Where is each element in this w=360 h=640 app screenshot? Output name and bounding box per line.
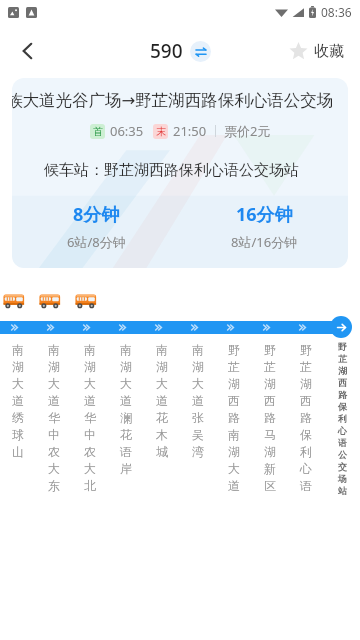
button[interactable]: 野 xyxy=(288,342,324,495)
staticText: 大 xyxy=(192,376,204,391)
staticText: 道 xyxy=(156,393,168,408)
staticText: 大 xyxy=(48,376,60,391)
staticText: 湖 xyxy=(48,359,60,374)
staticText: 8分钟 xyxy=(73,202,120,227)
staticText: 大 xyxy=(48,461,60,476)
staticText: 澜 xyxy=(120,410,132,425)
staticText: 交 xyxy=(338,461,347,472)
staticText: 大 xyxy=(120,376,132,391)
staticText: 野 xyxy=(300,342,312,357)
staticText: 西 xyxy=(300,393,312,408)
staticText: 南 xyxy=(84,342,96,357)
staticText: 06:35 xyxy=(110,122,144,140)
staticText: 保 xyxy=(300,427,312,442)
staticText: 岸 xyxy=(120,461,132,476)
staticText: 湾 xyxy=(192,444,204,459)
button[interactable]: 南 xyxy=(72,342,108,495)
staticText: 16分钟 xyxy=(236,202,293,227)
button[interactable]: Back xyxy=(6,29,50,73)
staticText: 语 xyxy=(300,478,312,493)
button[interactable]: Switch direction xyxy=(190,41,211,62)
staticText: 利 xyxy=(300,444,312,459)
staticText: 中 xyxy=(84,427,96,442)
staticText: 08:36 xyxy=(321,4,352,20)
staticText: 公 xyxy=(338,449,347,460)
staticText: 南 xyxy=(192,342,204,357)
staticText: 野 xyxy=(228,342,240,357)
staticText: 路 xyxy=(264,410,276,425)
staticText: 华 xyxy=(48,410,60,425)
staticText: 花 xyxy=(120,427,132,442)
staticText: 族大道光谷广场→野芷湖西路保利心语公交场站 xyxy=(12,90,342,111)
staticText: 中 xyxy=(48,427,60,442)
staticText: 湖 xyxy=(228,444,240,459)
staticText: 芷 xyxy=(338,353,347,364)
staticText: 首 xyxy=(93,125,103,138)
staticText: 语 xyxy=(338,437,347,448)
staticText: 张 xyxy=(192,410,204,425)
staticText: 6站/8分钟 xyxy=(67,233,126,251)
staticText: 候车站：野芷湖西路保利心语公交场站 xyxy=(44,161,299,180)
staticText: 湖 xyxy=(338,365,347,376)
staticText: 语 xyxy=(120,444,132,459)
staticText: 道 xyxy=(228,478,240,493)
staticText: 道 xyxy=(12,393,24,408)
staticText: 南 xyxy=(12,342,24,357)
staticText: 心 xyxy=(338,425,347,436)
staticText: 东 xyxy=(48,478,60,493)
button[interactable]: 族大道光谷广场→野芷湖西路保利心语公交场站 xyxy=(12,78,348,268)
staticText: 道 xyxy=(120,393,132,408)
button[interactable]: 8分钟 xyxy=(12,202,180,251)
button[interactable]: 16分钟 xyxy=(180,202,348,251)
staticText: 南 xyxy=(48,342,60,357)
button[interactable]: 南 xyxy=(180,342,216,461)
staticText: 大 xyxy=(228,461,240,476)
button[interactable]: 南 xyxy=(0,342,36,461)
staticText: 西 xyxy=(338,377,347,388)
staticText: 大 xyxy=(84,461,96,476)
staticText: 大 xyxy=(12,376,24,391)
staticText: 收藏 xyxy=(314,42,344,61)
staticText: 芷 xyxy=(228,359,240,374)
staticText: 保 xyxy=(338,401,347,412)
staticText: 野 xyxy=(338,341,347,352)
staticText: 南 xyxy=(228,427,240,442)
button[interactable]: 野 xyxy=(252,342,288,495)
staticText: 道 xyxy=(192,393,204,408)
staticText: 山 xyxy=(12,444,24,459)
staticText: 票价2元 xyxy=(224,122,271,140)
staticText: 道 xyxy=(84,393,96,408)
staticText: 城 xyxy=(156,444,168,459)
button[interactable]: Next direction xyxy=(330,316,352,338)
staticText: 新 xyxy=(264,461,276,476)
staticText: 西 xyxy=(264,393,276,408)
staticText: 大 xyxy=(84,376,96,391)
staticText: 场 xyxy=(338,473,347,484)
staticText: 末 xyxy=(156,125,166,138)
staticText: 590 xyxy=(150,38,183,64)
staticText: 北 xyxy=(84,478,96,493)
staticText: 路 xyxy=(338,389,347,400)
staticText: 21:50 xyxy=(173,122,207,140)
staticText: 西 xyxy=(228,393,240,408)
staticText: 湖 xyxy=(300,376,312,391)
staticText: 湖 xyxy=(12,359,24,374)
staticText: 农 xyxy=(84,444,96,459)
staticText: 芷 xyxy=(264,359,276,374)
staticText: 湖 xyxy=(84,359,96,374)
button[interactable]: 野 xyxy=(216,342,252,495)
staticText: 农 xyxy=(48,444,60,459)
staticText: 利 xyxy=(338,413,347,424)
button[interactable]: 南 xyxy=(36,342,72,495)
staticText: 木 xyxy=(156,427,168,442)
button[interactable]: 收藏 xyxy=(285,36,348,67)
staticText: 南 xyxy=(120,342,132,357)
button[interactable]: 野 xyxy=(324,342,360,498)
staticText: 球 xyxy=(12,427,24,442)
staticText: 心 xyxy=(300,461,312,476)
staticText: 华 xyxy=(84,410,96,425)
staticText: 湖 xyxy=(192,359,204,374)
staticText: 湖 xyxy=(264,376,276,391)
button[interactable]: 南 xyxy=(144,342,180,461)
button[interactable]: 南 xyxy=(108,342,144,478)
